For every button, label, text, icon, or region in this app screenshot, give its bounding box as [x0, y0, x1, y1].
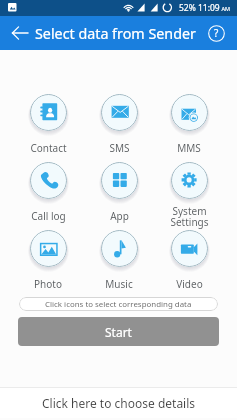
staticText: SMS: [109, 141, 130, 155]
staticText: System Settings: [170, 204, 209, 229]
staticText: Call log: [31, 209, 66, 223]
button[interactable]: Click here to choose details: [0, 388, 237, 418]
staticText: MMS: [177, 141, 201, 155]
button[interactable]: Start: [18, 317, 219, 346]
staticText: Select data from Sender: [35, 24, 196, 43]
staticText: Start: [105, 324, 132, 340]
staticText: Music: [105, 277, 133, 291]
staticText: Contact: [30, 141, 67, 155]
staticText: ?: [214, 26, 219, 40]
staticText: Click here to choose details: [42, 395, 196, 411]
button[interactable]: Music: [84, 230, 154, 285]
button[interactable]: Call log: [13, 162, 83, 217]
button[interactable]: Click icons to select corresponding data: [19, 297, 218, 311]
button[interactable]: System Settings: [154, 162, 224, 217]
staticText: 52% 11:09: [179, 2, 220, 14]
staticText: Click icons to select corresponding data: [45, 299, 192, 310]
staticText: App: [110, 209, 129, 223]
button[interactable]: Contact: [13, 94, 83, 149]
button[interactable]: Help: [203, 20, 229, 46]
button[interactable]: Back: [7, 20, 33, 46]
button[interactable]: App: [84, 162, 154, 217]
staticText: Photo: [34, 277, 62, 291]
button[interactable]: MMS: [154, 94, 224, 149]
button[interactable]: Photo: [13, 230, 83, 285]
button[interactable]: SMS: [84, 94, 154, 149]
button[interactable]: Video: [154, 230, 224, 285]
staticText: Video: [176, 277, 203, 291]
staticText: AM: [220, 5, 230, 12]
